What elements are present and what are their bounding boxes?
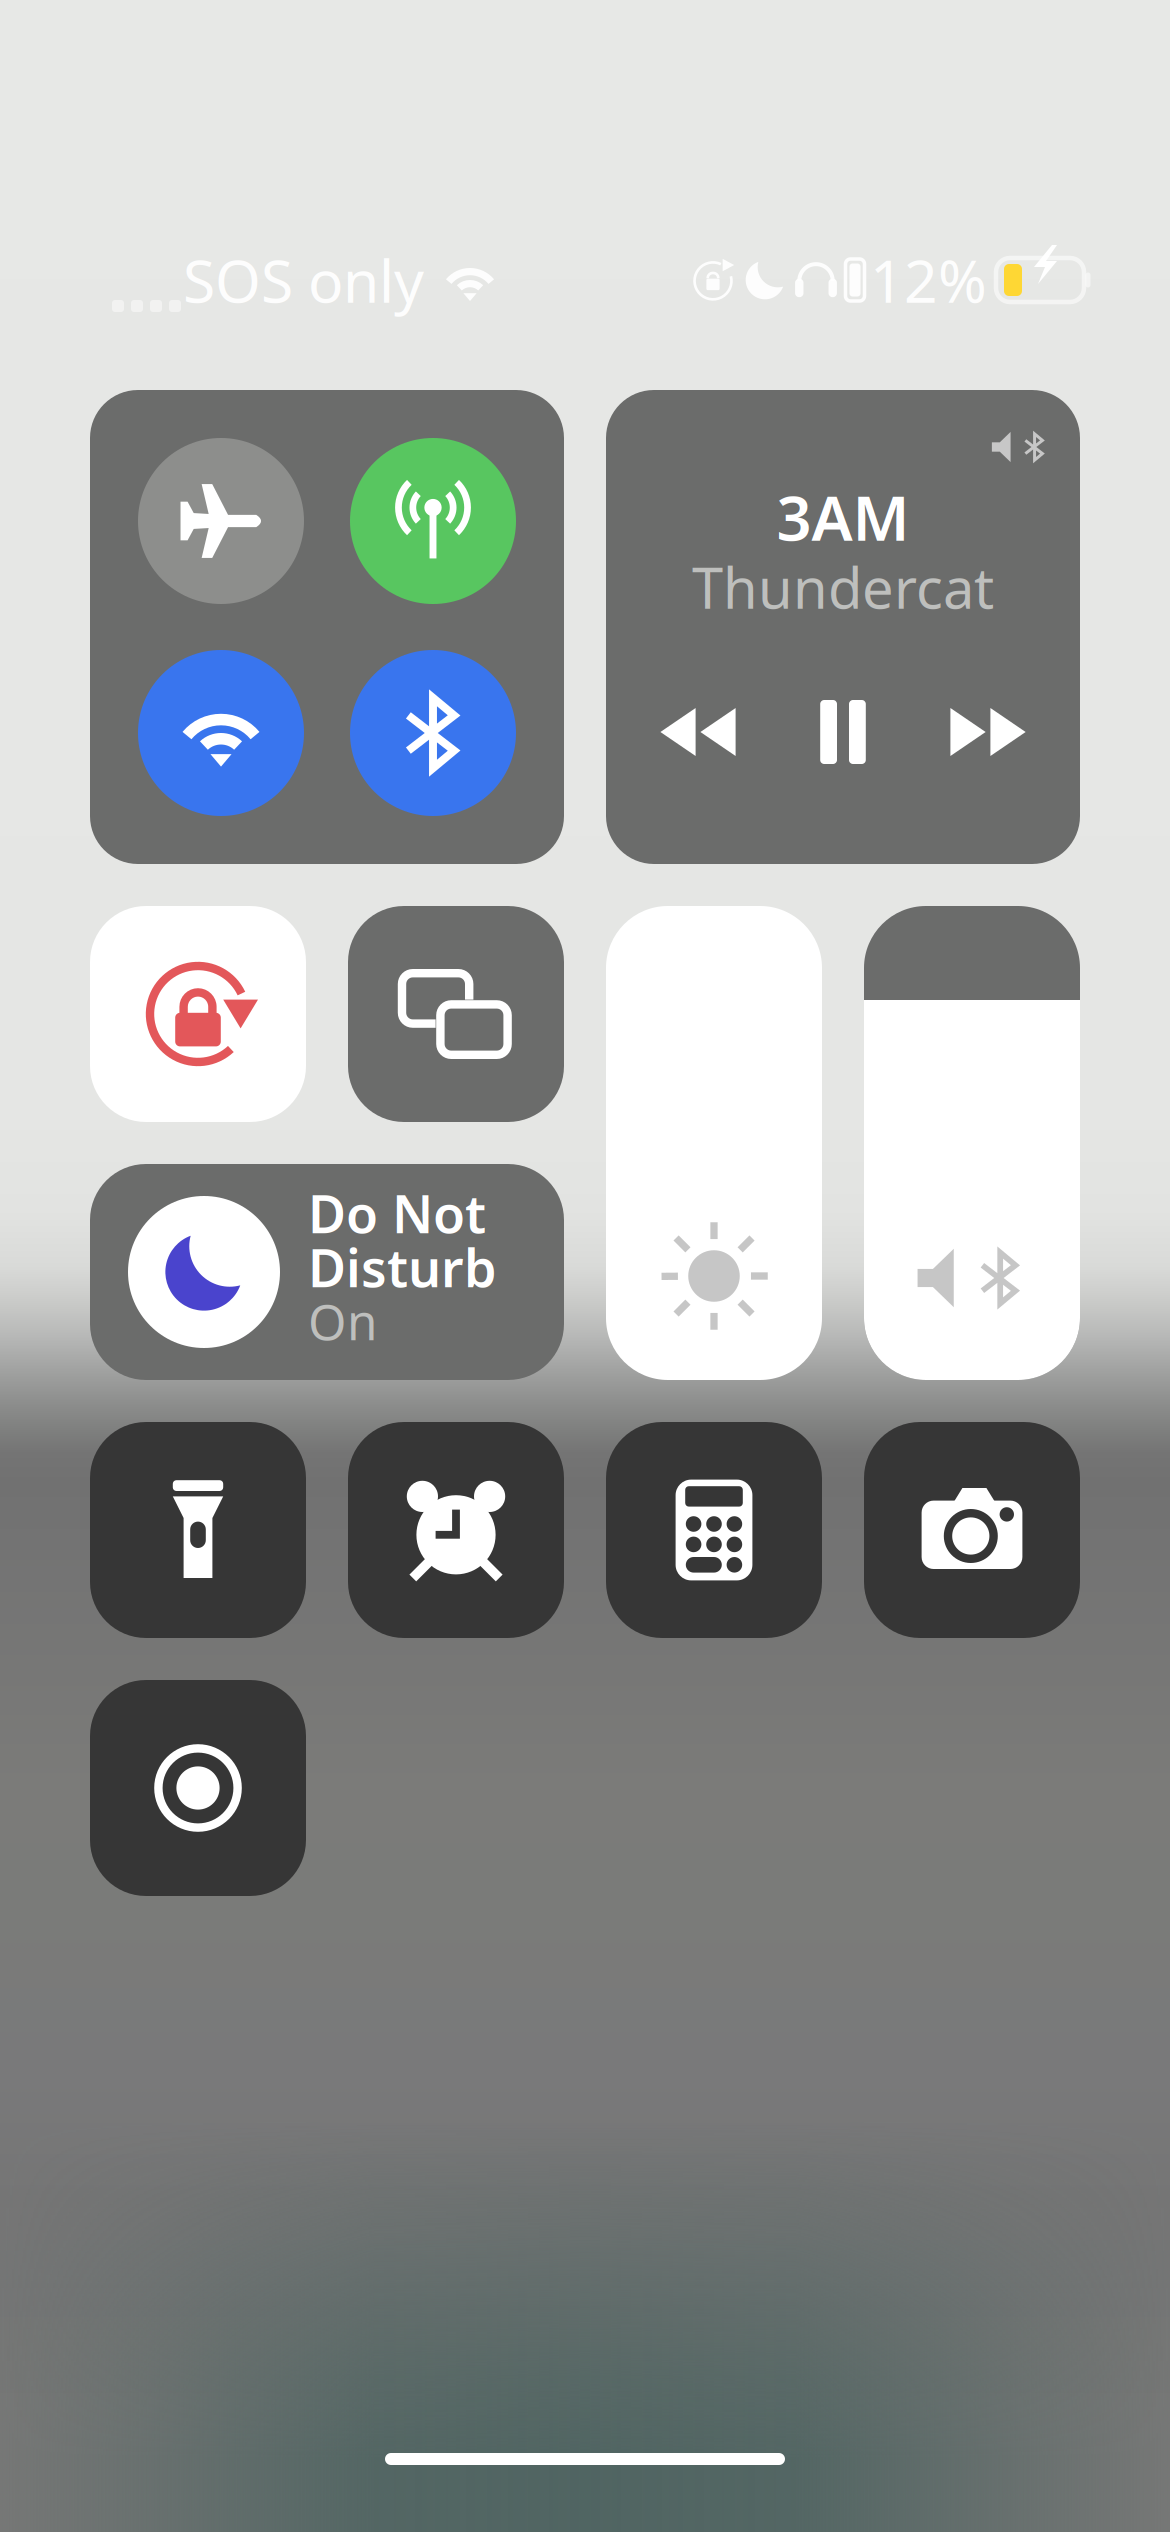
button[interactable]: Pause xyxy=(803,692,883,772)
button[interactable]: Brightness xyxy=(606,906,822,1380)
button[interactable]: Calculator xyxy=(606,1422,822,1638)
button[interactable]: Screen Mirroring xyxy=(348,906,564,1122)
staticText: Thundercat xyxy=(692,550,994,624)
button[interactable]: Screen Recording xyxy=(90,1680,306,1896)
staticText: 3AM xyxy=(776,476,909,558)
staticText: SOS only xyxy=(183,241,424,319)
button[interactable]: Rotation Lock xyxy=(90,906,306,1122)
staticText: Do Not xyxy=(308,1178,486,1248)
button[interactable]: Airplane Mode xyxy=(138,438,304,604)
button[interactable]: Do Not Disturb, On xyxy=(90,1164,564,1380)
staticText: On xyxy=(308,1288,377,1354)
button[interactable]: Timer xyxy=(348,1422,564,1638)
button[interactable]: Wi-Fi xyxy=(138,650,304,816)
button[interactable]: Bluetooth xyxy=(350,650,516,816)
button[interactable]: Cellular Data xyxy=(350,438,516,604)
button[interactable]: Volume xyxy=(864,906,1080,1380)
staticText: Disturb xyxy=(308,1232,497,1302)
button[interactable]: Rewind xyxy=(658,692,738,772)
button[interactable]: Camera xyxy=(864,1422,1080,1638)
button[interactable]: Flashlight xyxy=(90,1422,306,1638)
staticText: 12% xyxy=(870,241,987,319)
button[interactable]: Fast Forward xyxy=(948,692,1028,772)
